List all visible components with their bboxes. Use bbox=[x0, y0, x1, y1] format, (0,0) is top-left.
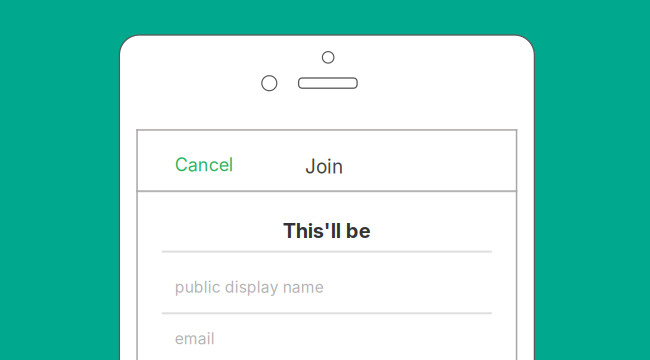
staticText: This'll be bbox=[283, 219, 371, 243]
staticText: email bbox=[175, 329, 215, 348]
button[interactable]: email bbox=[136, 313, 517, 360]
staticText: public display name bbox=[175, 277, 324, 296]
button[interactable]: Cancel bbox=[136, 129, 286, 191]
staticText: Cancel bbox=[175, 154, 233, 175]
staticText: Join bbox=[305, 155, 343, 178]
button[interactable]: public display name bbox=[136, 252, 517, 313]
